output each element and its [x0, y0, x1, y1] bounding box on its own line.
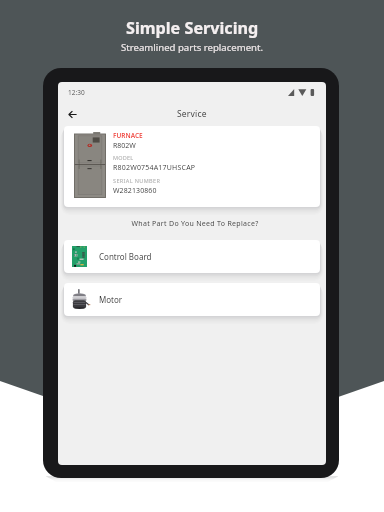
staticText: Service	[177, 108, 207, 120]
staticText: R802W0754A17UHSCAP	[113, 163, 196, 173]
staticText: Streamlined parts replacement.	[121, 41, 264, 54]
button[interactable]: Back	[63, 105, 81, 123]
staticText: Simple Servicing	[126, 17, 259, 39]
staticText: SERIAL NUMBER	[113, 177, 161, 184]
staticText: Control Board	[99, 251, 152, 262]
staticText: What Part Do You Need To Replace?	[61, 219, 326, 229]
button[interactable]: FURNACE	[64, 126, 320, 207]
button[interactable]: Control Board	[64, 240, 320, 273]
staticText: 12:30	[68, 88, 85, 97]
staticText: MODEL	[113, 154, 134, 161]
staticText: W282130860	[113, 186, 157, 196]
staticText: R802W	[113, 141, 136, 151]
button[interactable]: Motor	[64, 283, 320, 316]
staticText: Motor	[99, 294, 123, 305]
staticText: FURNACE	[113, 131, 143, 140]
